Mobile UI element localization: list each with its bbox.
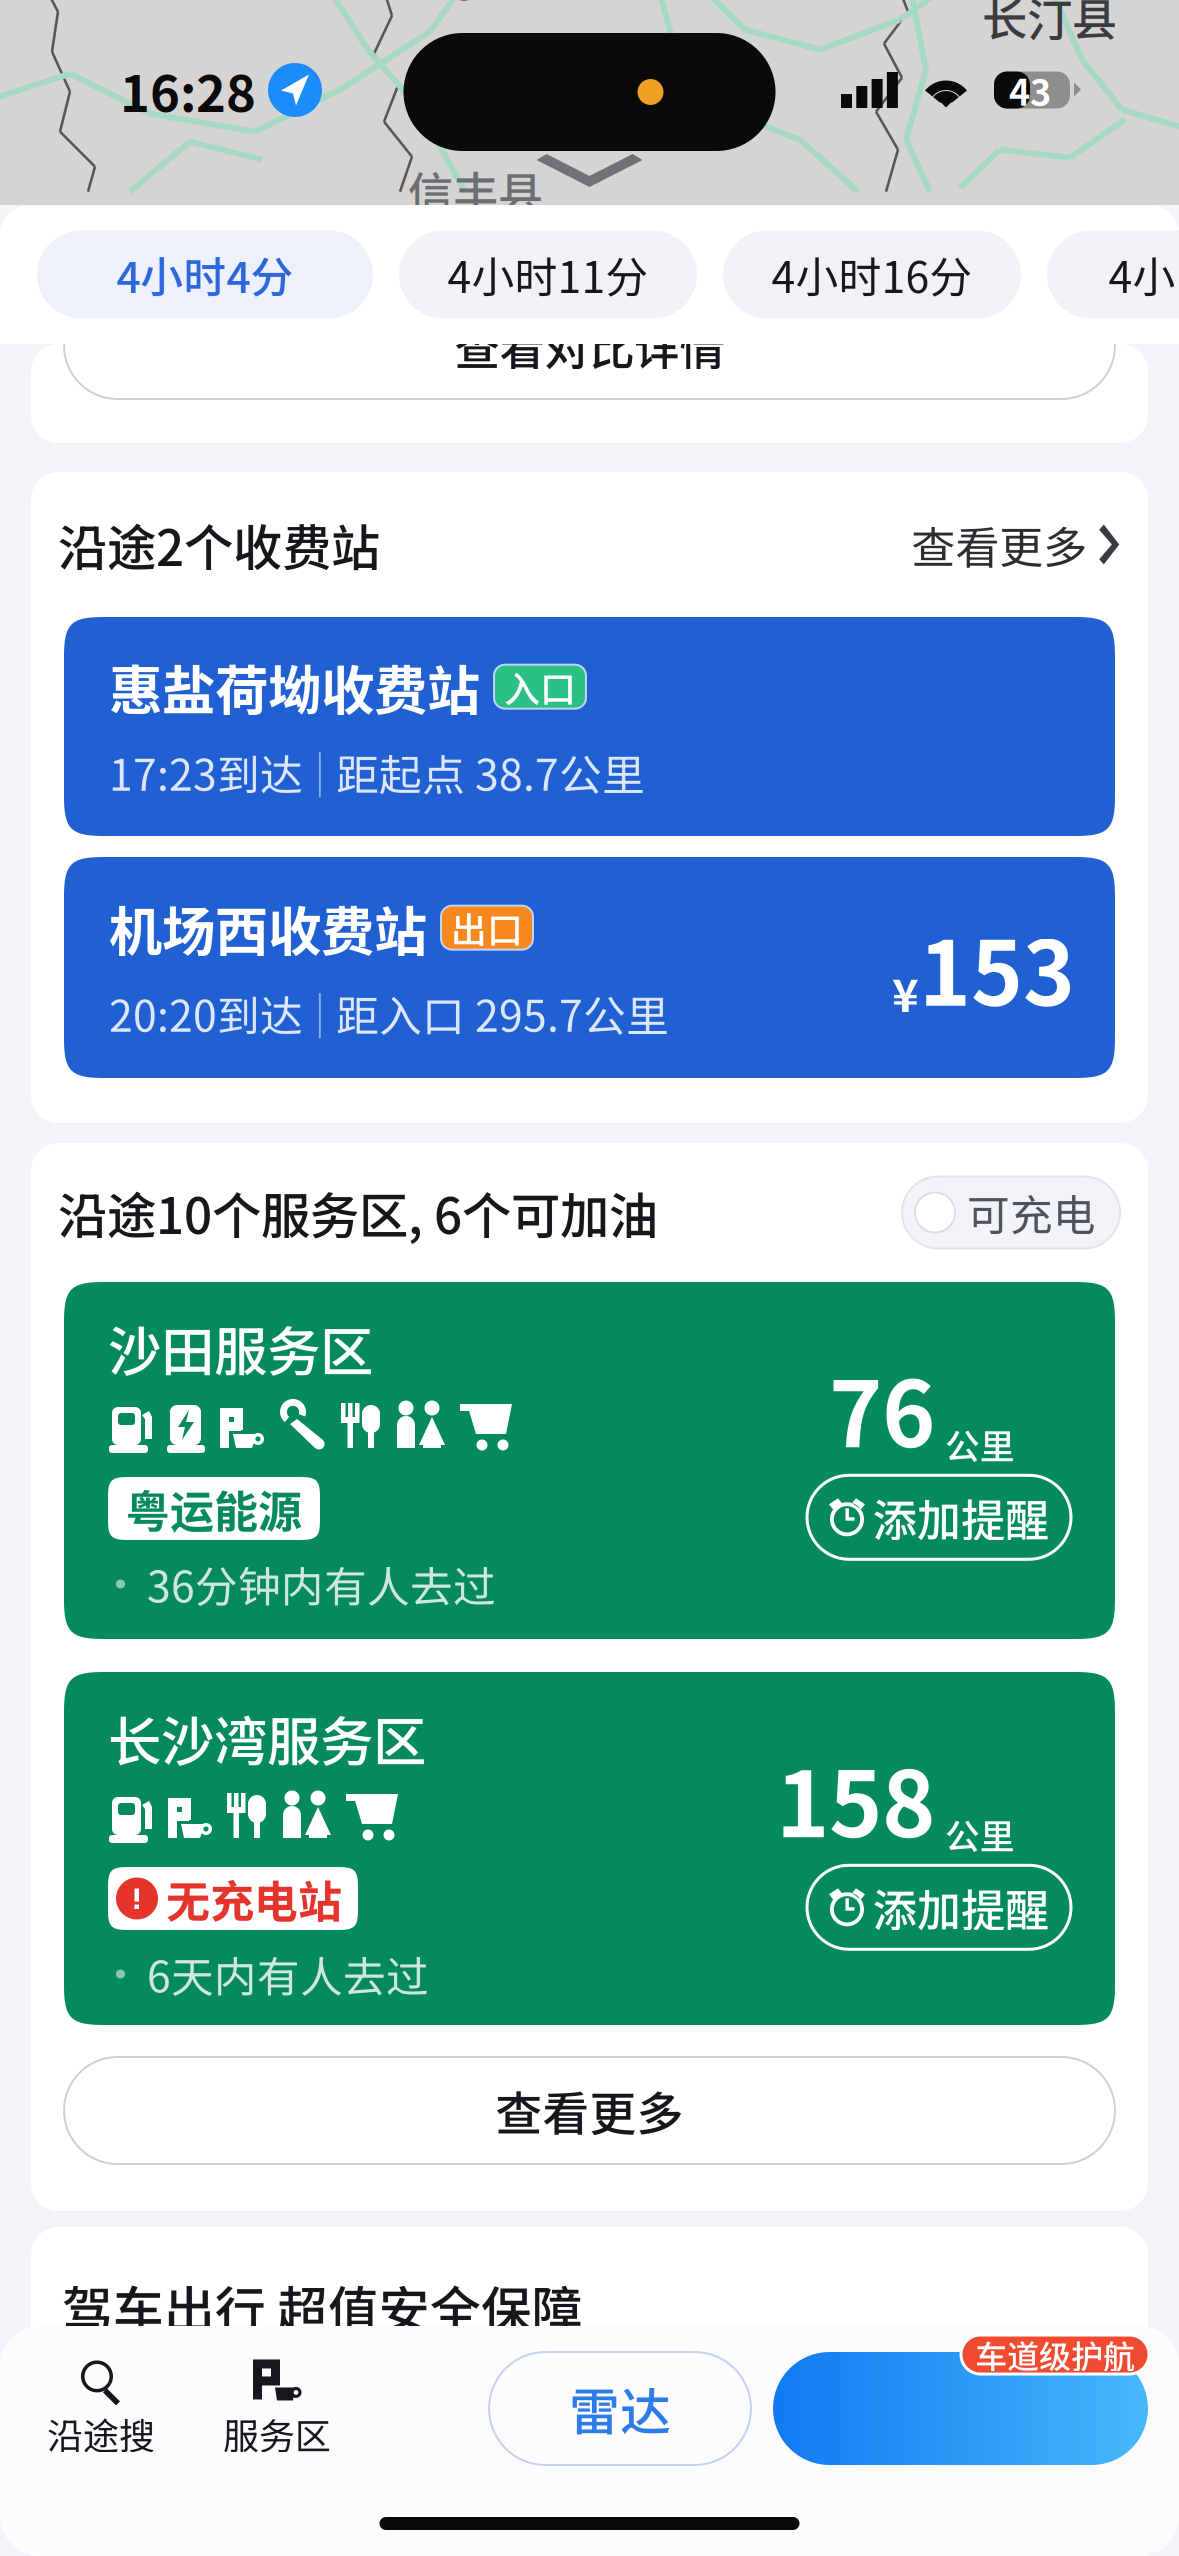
staticText: 沙田服务区 [108, 1309, 373, 1387]
button[interactable]: 服务区 [201, 2357, 353, 2459]
staticText: 信丰县 [408, 158, 543, 223]
staticText: 16:28 [120, 53, 256, 127]
staticText: │ [297, 739, 342, 805]
staticText: 距入口 295.7公里 [336, 982, 669, 1044]
staticText: 服务区 [223, 2407, 331, 2459]
staticText: 粤运能源 [126, 1477, 302, 1540]
button[interactable]: 查看对比详情 [31, 292, 1148, 399]
button[interactable]: 雷达 [489, 2352, 751, 2465]
staticText: 公里 [945, 1809, 1015, 1859]
button[interactable]: 开始导航 [773, 2352, 1148, 2465]
staticText: 查看更多 [911, 513, 1087, 576]
staticText: 6天内有人去过 [147, 1943, 429, 2005]
button[interactable]: 添加提醒 [807, 1865, 1071, 1949]
staticText: 153 [919, 904, 1075, 1031]
staticText: 43 [1009, 64, 1051, 116]
staticText: 沿途10个服务区, 6个可加油 [58, 1177, 658, 1248]
staticText: 无充电站 [166, 1867, 342, 1930]
button[interactable]: 添加提醒 [807, 1475, 1071, 1559]
button[interactable]: 查看更多 [911, 513, 1120, 576]
staticText: 添加提醒 [873, 1875, 1049, 1939]
button[interactable]: 机场西收费站 [31, 857, 1148, 1078]
button[interactable]: 4小时4分 [37, 230, 373, 318]
staticText: 驾车出行 超值安全保障 [62, 2270, 583, 2343]
staticText: 长汀县 [982, 0, 1117, 49]
staticText: 添加提醒 [873, 1485, 1049, 1549]
staticText: 沿途搜 [47, 2407, 155, 2459]
button[interactable]: 4小时16分 [723, 230, 1021, 318]
staticText: 4小时11分 [447, 244, 648, 305]
staticText: 4小时16分 [771, 244, 972, 305]
staticText: 4小时4分 [116, 244, 293, 305]
button[interactable]: 可充电 [902, 1176, 1120, 1248]
staticText: 查看对比详情 [454, 313, 724, 378]
staticText: 雷达 [569, 2372, 671, 2445]
button[interactable]: 长沙湾服务区 [31, 1672, 1148, 2025]
button[interactable]: 查看更多 [31, 2057, 1148, 2164]
staticText: 车道级护航 [975, 2331, 1135, 2378]
staticText: 查看更多 [495, 2077, 683, 2144]
staticText: 可充电 [967, 1182, 1096, 1243]
staticText: 惠盐荷坳收费站 [109, 648, 480, 725]
button[interactable]: 沿途搜 [25, 2357, 177, 2459]
staticText: │ [297, 980, 342, 1046]
staticText: 出口 [451, 902, 523, 954]
staticText: ¥ [892, 960, 919, 1025]
staticText: 4小 [1108, 244, 1175, 305]
staticText: 长沙湾服务区 [108, 1699, 426, 1777]
staticText: 17:23到达 [109, 741, 303, 803]
staticText: 机场西收费站 [109, 889, 427, 966]
staticText: 20:20到达 [109, 982, 303, 1044]
button[interactable]: 4小 [1047, 230, 1179, 318]
button[interactable]: 4小时11分 [399, 230, 697, 318]
staticText: 158 [776, 1732, 935, 1863]
staticText: 公里 [945, 1419, 1015, 1469]
staticText: 入口 [504, 661, 576, 713]
button[interactable]: 沙田服务区 [31, 1282, 1148, 1639]
staticText: 76 [829, 1342, 935, 1473]
staticText: 距起点 38.7公里 [336, 741, 645, 803]
button[interactable]: 惠盐荷坳收费站 [31, 617, 1148, 836]
staticText: 36分钟内有人去过 [147, 1553, 496, 1615]
staticText: 沿途2个收费站 [58, 509, 380, 580]
